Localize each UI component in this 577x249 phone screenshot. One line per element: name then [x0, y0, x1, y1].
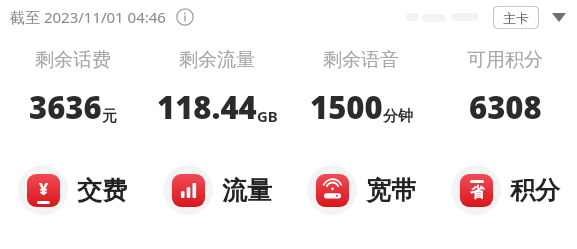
staticText: ¥ — [39, 178, 49, 200]
staticText: 剩余话费 — [35, 48, 111, 72]
button[interactable]: 宽带 — [289, 165, 433, 215]
button[interactable]: 说明 — [174, 6, 196, 28]
button[interactable]: 剩余语音 — [289, 48, 433, 128]
button[interactable]: 切换号码 — [547, 5, 571, 29]
button[interactable]: ¥ — [0, 165, 145, 215]
button[interactable]: 流量 — [145, 165, 289, 215]
staticText: 1500 — [310, 86, 383, 128]
staticText: GB — [257, 106, 278, 126]
staticText: 分钟 — [383, 107, 413, 126]
staticText: 可用积分 — [467, 48, 543, 72]
staticText: 宽带 — [366, 175, 416, 206]
staticText: 118.44 — [157, 86, 257, 128]
button[interactable]: 剩余流量 — [145, 48, 289, 128]
staticText: 剩余语音 — [323, 48, 399, 72]
staticText: 元 — [102, 107, 117, 126]
staticText: 流量 — [222, 175, 272, 206]
button[interactable]: 主卡 — [493, 6, 539, 29]
button[interactable]: 省 — [433, 165, 577, 215]
staticText: 剩余流量 — [179, 48, 255, 72]
button[interactable]: 可用积分 — [433, 48, 577, 128]
staticText: 3636 — [29, 86, 102, 128]
staticText: 6308 — [469, 86, 542, 128]
staticText: 省 — [470, 184, 484, 202]
staticText: 主卡 — [503, 10, 529, 26]
button[interactable]: 剩余话费 — [0, 48, 145, 128]
staticText: 积分 — [510, 175, 560, 206]
staticText: 交费 — [77, 175, 127, 206]
staticText: 截至 2023/11/01 04:46 — [10, 7, 166, 27]
